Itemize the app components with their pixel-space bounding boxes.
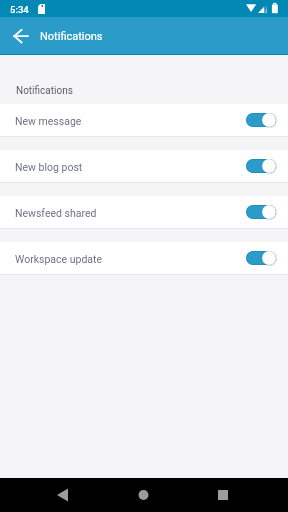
button[interactable]: New message: [0, 104, 288, 136]
staticText: Newsfeed shared: [15, 207, 246, 219]
staticText: New blog post: [15, 161, 246, 173]
button[interactable]: Newsfeed shared: [0, 196, 288, 228]
button[interactable]: Back: [0, 17, 37, 54]
staticText: 5:34: [10, 4, 29, 15]
button[interactable]: Workspace update: [0, 242, 288, 274]
staticText: New message: [15, 115, 246, 127]
button[interactable]: New blog post: [0, 150, 288, 182]
staticText: Notifications: [40, 30, 103, 43]
staticText: Notifications: [16, 85, 73, 97]
staticText: Workspace update: [15, 253, 246, 265]
